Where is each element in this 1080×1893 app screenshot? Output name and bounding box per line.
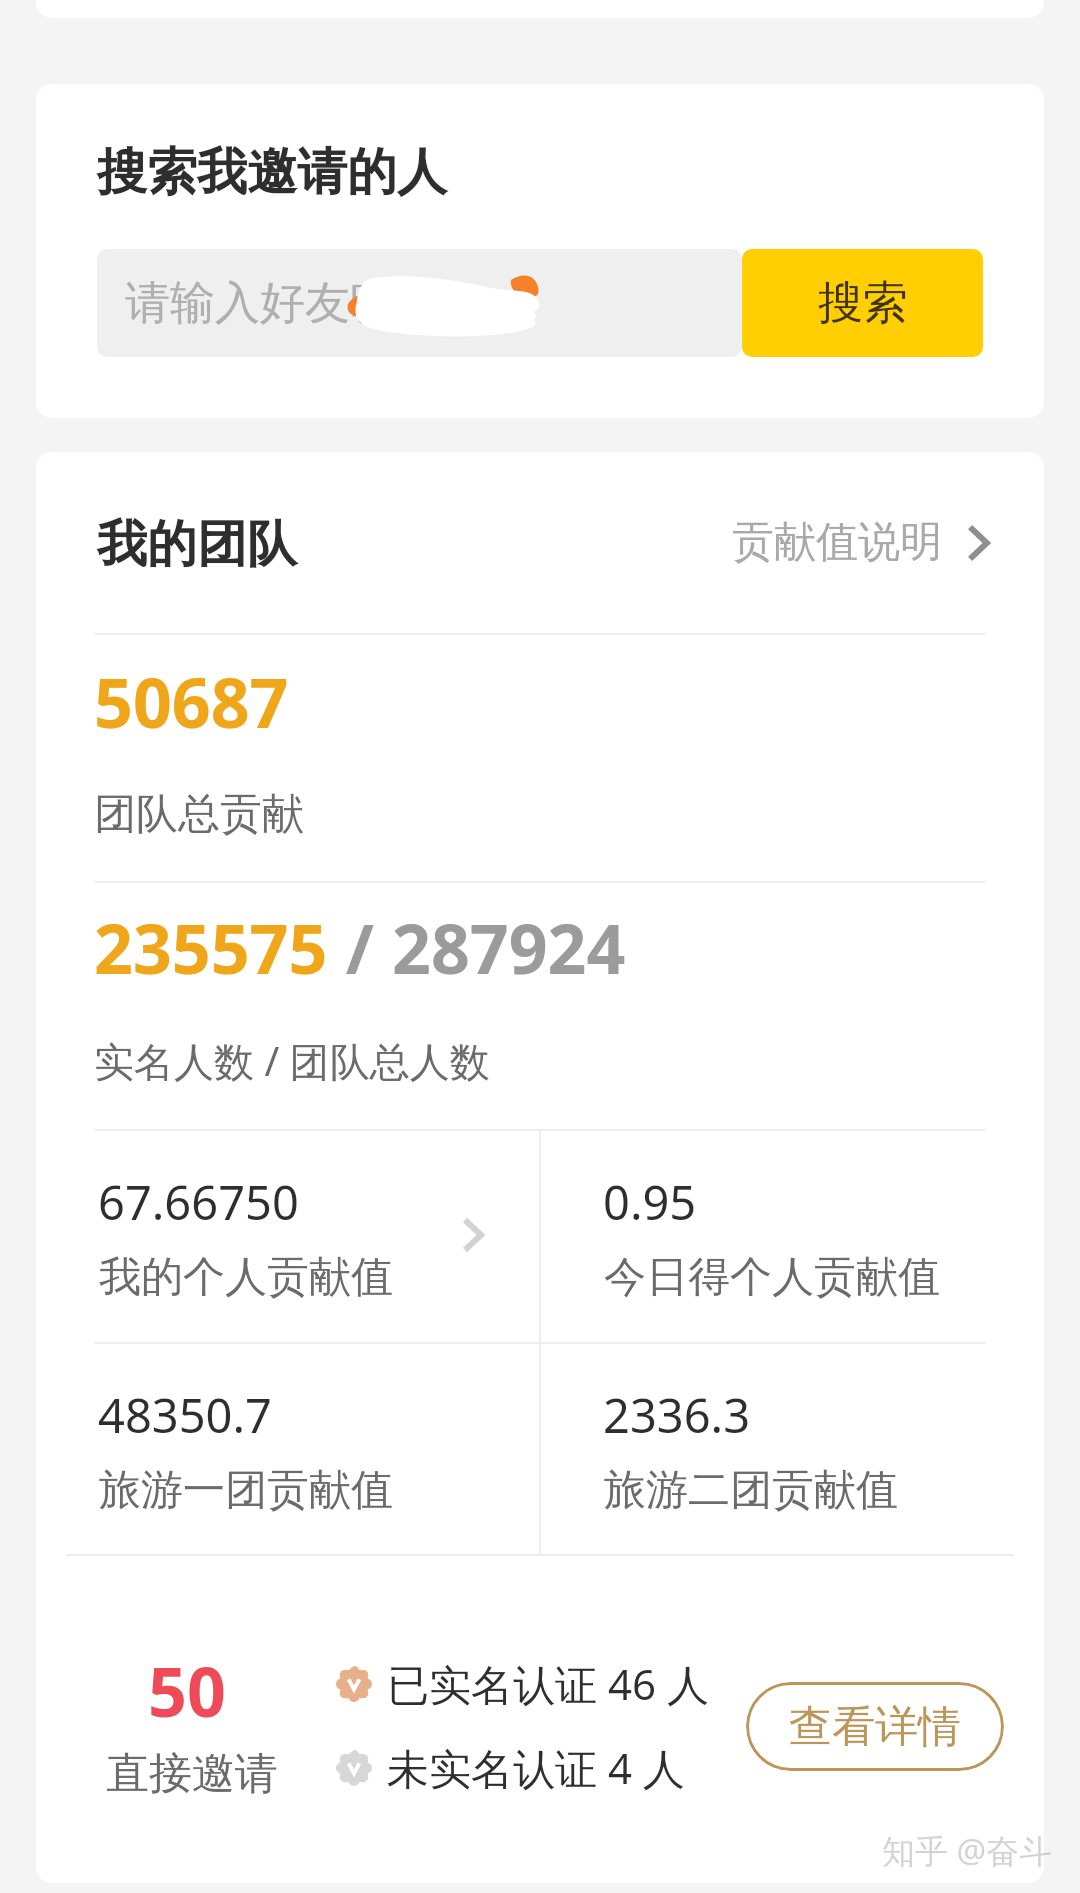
staticText: 已实名认证 46 人 [387, 1655, 709, 1712]
staticText: 我的个人贡献值 [99, 1251, 393, 1304]
staticText: 旅游一团贡献值 [99, 1464, 393, 1517]
staticText: 实名人数 / 团队总人数 [94, 1033, 490, 1088]
button[interactable]: 2336.3 [541, 1344, 1044, 1554]
button[interactable]: 贡献值说明 [702, 486, 1044, 599]
staticText: 搜索我邀请的人 [97, 141, 447, 204]
staticText: 0.95 [603, 1170, 697, 1234]
staticText: 48350.7 [98, 1383, 272, 1447]
staticText: 2336.3 [603, 1383, 751, 1447]
button[interactable]: 搜索 [742, 249, 983, 357]
staticText: 67.66750 [98, 1170, 299, 1234]
staticText: 50687 [94, 655, 289, 748]
staticText: 50 [148, 1644, 226, 1737]
staticText: 我的团队 [97, 513, 297, 576]
staticText: 287924 [392, 901, 626, 994]
staticText: 贡献值说明 [732, 516, 942, 569]
staticText: 今日得个人贡献值 [604, 1251, 940, 1304]
staticText: 旅游二团贡献值 [604, 1464, 898, 1517]
button[interactable]: 请输入好友昵称 [97, 249, 742, 357]
button[interactable]: 0.95 [541, 1131, 1044, 1342]
button[interactable]: 67.66750 [36, 1131, 539, 1342]
button[interactable]: 查看详情 [746, 1682, 1004, 1771]
button[interactable]: 48350.7 [36, 1344, 539, 1554]
staticText: 235575 [94, 901, 328, 994]
staticText: 请输入好友昵称 [125, 275, 440, 332]
staticText: 搜索 [818, 275, 908, 332]
staticText: 查看详情 [789, 1700, 961, 1754]
staticText: 未实名认证 4 人 [387, 1739, 685, 1796]
staticText: 知乎 @奋斗 [882, 1828, 1053, 1873]
staticText: / [328, 901, 392, 994]
staticText: 直接邀请 [106, 1747, 278, 1801]
staticText: 团队总贡献 [94, 788, 304, 841]
